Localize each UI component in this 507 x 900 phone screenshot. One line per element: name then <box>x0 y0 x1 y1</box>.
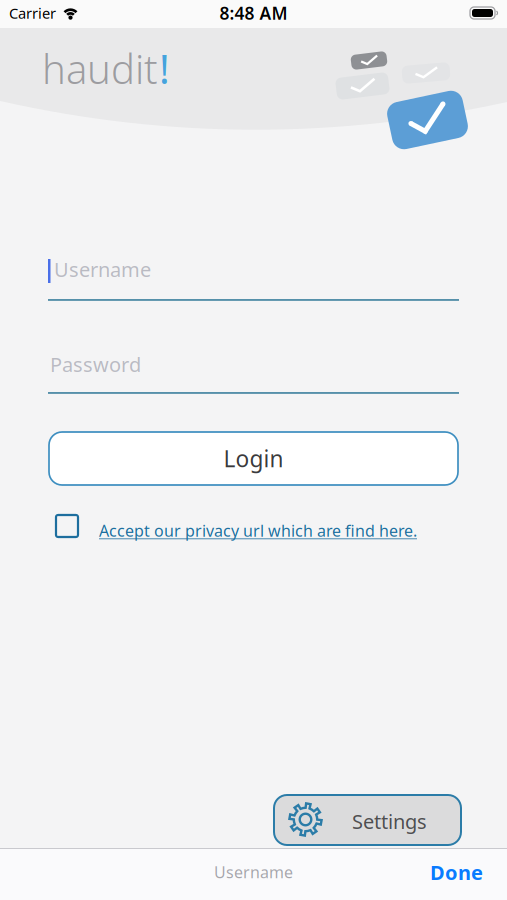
staticText: Done <box>430 859 483 886</box>
staticText: ! <box>159 42 170 95</box>
staticText: Settings <box>352 808 427 835</box>
button[interactable]: Accept our privacy url which are find he… <box>99 520 417 541</box>
staticText: Carrier <box>9 3 56 23</box>
staticText: Accept our privacy url which are find he… <box>99 520 417 541</box>
staticText: Username <box>54 256 151 283</box>
button[interactable]: Done <box>430 859 483 886</box>
staticText: 8:48 AM <box>219 1 287 24</box>
staticText: Login <box>223 443 283 473</box>
button[interactable]: Accept privacy policy <box>56 515 78 537</box>
button[interactable]: Login <box>49 432 458 485</box>
staticText: Username <box>214 861 293 883</box>
button[interactable]: Settings <box>274 795 461 845</box>
staticText: haudit <box>42 42 158 95</box>
staticText: Password <box>50 351 141 378</box>
